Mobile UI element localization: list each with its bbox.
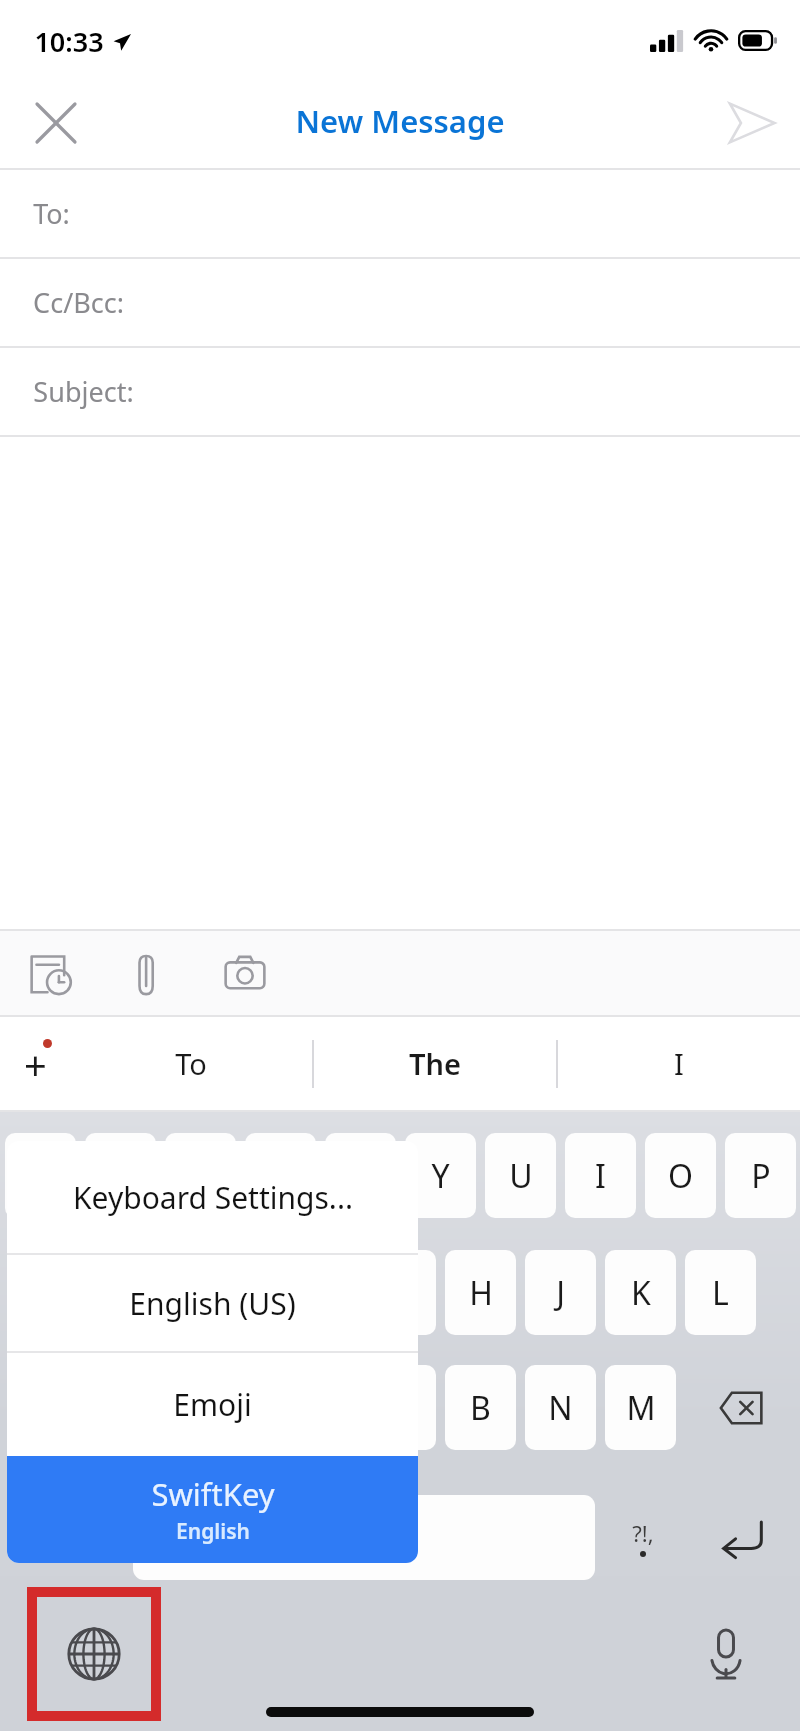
staticText: Emoji [173,1384,252,1425]
staticText: 10:33 [34,23,104,60]
staticText: Y [431,1154,450,1198]
staticText: English (US) [129,1283,296,1324]
staticText: X [231,1386,250,1430]
button[interactable]: X [205,1365,276,1450]
staticText: K [631,1271,651,1315]
button[interactable]: Punctuation [600,1495,686,1580]
button[interactable]: English (US) [7,1255,418,1351]
staticText: N [548,1386,573,1430]
button[interactable]: Shift [5,1365,108,1450]
button[interactable]: Calendar availability [18,938,84,1008]
staticText: Cc/Bcc: [33,284,124,321]
button[interactable]: Space [133,1495,595,1580]
staticText: W [106,1154,136,1198]
button[interactable]: To [70,1017,312,1110]
button[interactable]: Cc/Bcc: [0,259,800,346]
button[interactable]: I [558,1017,800,1110]
button[interactable]: Subject: [0,348,800,435]
button[interactable]: W [85,1133,156,1218]
button[interactable]: G [365,1250,436,1335]
button[interactable]: The [314,1017,556,1110]
button[interactable]: Z [125,1365,196,1450]
staticText: English [176,1517,250,1546]
button[interactable]: Switch keyboard [32,1592,156,1716]
staticText: U [509,1154,533,1198]
staticText: I [674,1044,684,1083]
staticText: L [712,1271,729,1315]
staticText: To [175,1044,207,1083]
staticText: SwiftKey [151,1473,275,1515]
button[interactable]: V [365,1365,436,1450]
staticText: E [192,1154,210,1198]
button[interactable]: K [605,1250,676,1335]
button[interactable]: N [525,1365,596,1450]
button[interactable]: Attach file [114,938,180,1008]
staticText: Keyboard Settings... [73,1177,353,1218]
staticText: M [626,1386,656,1430]
button[interactable]: SwiftKey [7,1456,418,1563]
staticText: S [152,1271,170,1315]
button[interactable]: J [525,1250,596,1335]
button[interactable]: Camera [212,938,278,1008]
staticText: Subject: [33,373,134,410]
button[interactable]: O [645,1133,716,1218]
button[interactable]: A [45,1250,116,1335]
button[interactable]: Add [0,1017,70,1110]
button[interactable]: Emoji [7,1353,418,1456]
staticText: D [229,1271,253,1315]
button[interactable]: Send [712,83,792,163]
button[interactable]: Y [405,1133,476,1218]
button[interactable]: Close [18,85,94,161]
staticText: New Message [295,100,505,142]
button[interactable]: 123 [5,1495,123,1580]
button[interactable]: To: [0,170,800,257]
button[interactable]: Keyboard Settings... [7,1141,418,1253]
button[interactable]: Numbers [5,1495,123,1580]
button[interactable]: P [725,1133,796,1218]
button[interactable]: D [205,1250,276,1335]
staticText: The [409,1044,461,1083]
staticText: B [470,1386,491,1430]
staticText: To: [33,195,70,232]
button[interactable]: R [245,1133,316,1218]
button[interactable]: I [565,1133,636,1218]
button[interactable]: T [325,1133,396,1218]
staticText: + [24,1037,47,1091]
staticText: O [668,1154,693,1198]
button[interactable]: U [485,1133,556,1218]
button[interactable]: F [285,1250,356,1335]
button[interactable]: S [125,1250,196,1335]
staticText: I [595,1154,606,1198]
button[interactable]: L [685,1250,756,1335]
button[interactable]: Backspace [690,1365,793,1450]
button[interactable]: Return [690,1495,793,1580]
staticText: P [751,1154,771,1198]
staticText: J [556,1271,565,1315]
button[interactable]: Q [5,1133,76,1218]
button[interactable]: B [445,1365,516,1450]
staticText: H [469,1271,493,1315]
staticText: ?!, [632,1518,654,1548]
button[interactable]: E [165,1133,236,1218]
staticText: R [271,1154,291,1198]
button[interactable]: H [445,1250,516,1335]
button[interactable]: Dictate [690,1592,762,1716]
button[interactable]: M [605,1365,676,1450]
